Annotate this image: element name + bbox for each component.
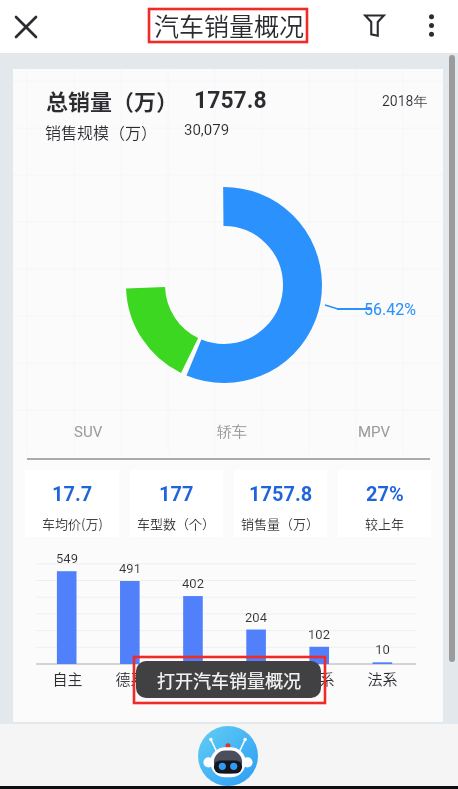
- staticText: 177: [159, 482, 194, 505]
- staticText: 30,079: [184, 121, 230, 139]
- button[interactable]: Assistant: [198, 726, 258, 786]
- staticText: 402: [182, 576, 204, 591]
- staticText: 总销量（万）: [46, 84, 179, 116]
- staticText: 德系: [115, 668, 146, 690]
- staticText: 102: [308, 627, 330, 642]
- staticText: 17.7: [52, 482, 93, 505]
- staticText: 2018年: [382, 93, 428, 111]
- button[interactable]: 17.7: [25, 470, 119, 537]
- staticText: 销售规模（万）: [45, 120, 158, 143]
- staticText: 27%: [366, 482, 404, 505]
- staticText: 10: [375, 642, 390, 657]
- staticText: 自主: [52, 668, 83, 690]
- button[interactable]: SUV: [16, 414, 160, 450]
- staticText: 549: [56, 551, 78, 566]
- button[interactable]: Close: [5, 6, 46, 47]
- button[interactable]: 177: [130, 470, 223, 537]
- staticText: 较上年: [365, 514, 405, 533]
- staticText: 56.42%: [364, 300, 416, 319]
- staticText: SUV: [74, 423, 103, 441]
- staticText: 日系: [178, 668, 209, 690]
- staticText: 1757.8: [194, 87, 267, 114]
- button[interactable]: 轿车: [160, 414, 303, 450]
- staticText: 销售量（万）: [241, 514, 320, 533]
- button[interactable]: Filter: [354, 5, 395, 46]
- staticText: 车型数（个）: [137, 514, 216, 533]
- button[interactable]: More options: [411, 5, 452, 46]
- staticText: 打开汽车销量概况: [157, 667, 301, 693]
- staticText: 轿车: [217, 423, 247, 442]
- staticText: 车均价(万): [42, 514, 103, 533]
- button[interactable]: MPV: [303, 414, 446, 450]
- staticText: MPV: [358, 423, 391, 441]
- staticText: 韩系: [304, 668, 335, 690]
- button[interactable]: 27%: [338, 470, 431, 537]
- staticText: 491: [119, 561, 141, 576]
- staticText: 法系: [367, 668, 398, 690]
- button[interactable]: 打开汽车销量概况: [136, 661, 321, 698]
- staticText: 204: [245, 610, 267, 625]
- staticText: 美系: [241, 668, 272, 690]
- staticText: 汽车销量概况: [154, 7, 305, 43]
- staticText: 1757.8: [249, 482, 313, 505]
- button[interactable]: 1757.8: [234, 470, 327, 537]
